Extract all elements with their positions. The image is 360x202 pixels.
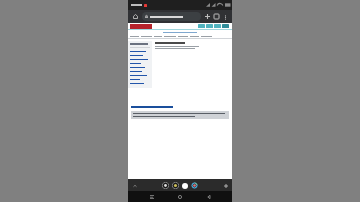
button[interactable] [130,78,150,81]
button[interactable] [142,12,201,21]
button[interactable] [130,82,150,85]
button[interactable] [130,58,150,61]
button[interactable]: Home [131,12,140,21]
button[interactable]: Nav item 4 [222,24,229,28]
button[interactable]: Home [175,192,185,202]
button[interactable]: Switch tabs [212,12,221,21]
button[interactable]: Nav item 3 [214,24,221,28]
button[interactable]: New tab [203,12,212,21]
button[interactable] [130,70,150,73]
button[interactable]: Recent apps [147,192,157,202]
button[interactable]: Screen recorder [191,182,198,189]
button[interactable]: Nav item 1 [198,24,205,28]
button[interactable]: Record [182,183,188,189]
button[interactable] [130,50,150,53]
button[interactable] [130,66,150,69]
button[interactable]: Nav item 2 [206,24,213,28]
button[interactable]: Timer [172,182,179,189]
button[interactable] [130,62,150,65]
button[interactable] [130,54,150,57]
button[interactable]: Add [222,182,229,189]
button[interactable] [130,74,150,77]
button[interactable]: Collapse [131,182,138,189]
button[interactable]: Settings [162,182,169,189]
button[interactable]: More options [221,13,229,21]
button[interactable]: Back [204,192,214,202]
